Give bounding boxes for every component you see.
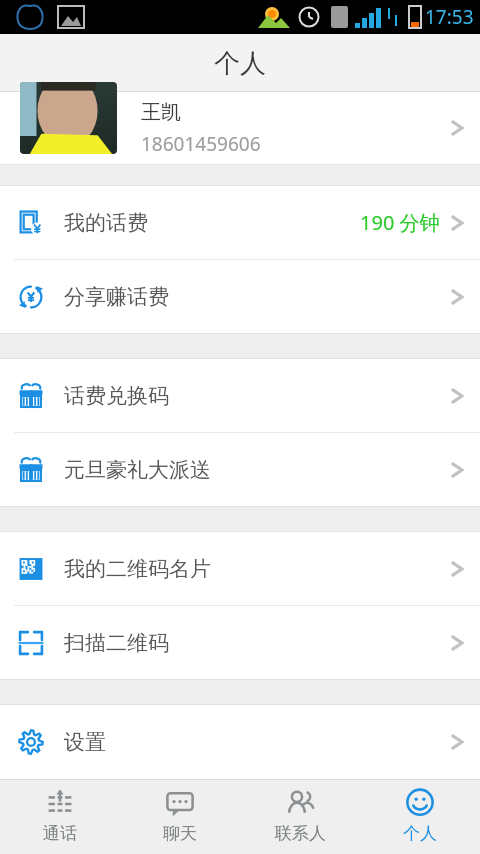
staticText: 190 分钟 bbox=[360, 209, 440, 236]
staticText: 联系人 bbox=[275, 823, 326, 844]
button[interactable]: 元旦豪礼大派送 bbox=[0, 433, 480, 506]
staticText: 个人 bbox=[214, 47, 266, 80]
staticText: 话费兑换码 bbox=[64, 383, 169, 409]
button[interactable]: 王凯 bbox=[0, 92, 480, 164]
button[interactable]: 联系人 bbox=[240, 780, 360, 854]
staticText: 个人 bbox=[403, 823, 437, 844]
staticText: 18601459606 bbox=[141, 131, 261, 157]
button[interactable]: 话费兑换码 bbox=[0, 359, 480, 432]
button[interactable]: 通话 bbox=[0, 780, 120, 854]
staticText: 扫描二维码 bbox=[64, 630, 169, 656]
staticText: 分享赚话费 bbox=[64, 284, 169, 310]
staticText: 聊天 bbox=[163, 823, 197, 844]
staticText: 我的二维码名片 bbox=[64, 556, 211, 582]
staticText: 设置 bbox=[64, 729, 106, 755]
staticText: 17:53 bbox=[425, 4, 474, 30]
button[interactable]: 扫描二维码 bbox=[0, 606, 480, 679]
button[interactable]: 分享赚话费 bbox=[0, 260, 480, 333]
staticText: 我的话费 bbox=[64, 210, 148, 236]
button[interactable]: 设置 bbox=[0, 705, 480, 778]
staticText: 通话 bbox=[43, 823, 77, 844]
button[interactable]: 我的二维码名片 bbox=[0, 532, 480, 605]
staticText: 王凯 bbox=[141, 100, 181, 125]
button[interactable]: 个人 bbox=[360, 780, 480, 854]
button[interactable]: 我的话费 bbox=[0, 186, 480, 259]
staticText: 元旦豪礼大派送 bbox=[64, 457, 211, 483]
button[interactable]: 聊天 bbox=[120, 780, 240, 854]
